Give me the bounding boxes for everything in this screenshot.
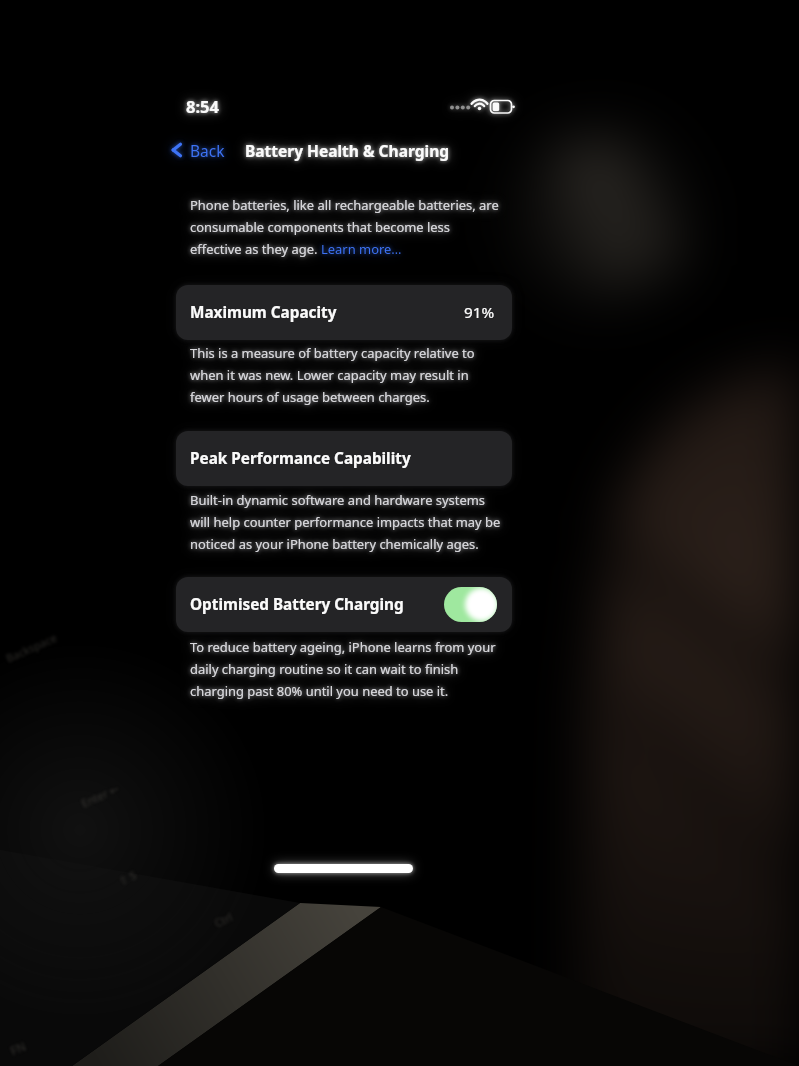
staticText: 91% — [464, 302, 495, 323]
staticText: Maximum Capacity — [190, 302, 337, 323]
staticText: FN — [7, 1037, 28, 1058]
button[interactable]: Optimised Battery Charging, on — [444, 587, 497, 622]
staticText: To reduce battery ageing, iPhone learns … — [190, 638, 496, 656]
staticText: Phone batteries, like all rechargeable b… — [190, 196, 499, 214]
staticText: Maximum Capacity — [190, 302, 337, 323]
staticText: daily charging routine so it can wait to… — [190, 660, 459, 678]
staticText: fewer hours of usage between charges. — [190, 388, 430, 406]
staticText: Battery Health & Charging — [245, 140, 449, 161]
staticText: consumable components that become less — [190, 218, 451, 236]
staticText: Learn more… — [321, 240, 402, 258]
staticText: when it was new. Lower capacity may resu… — [190, 366, 469, 384]
staticText: will help counter performance impacts th… — [190, 513, 501, 531]
staticText: ⇧ S — [116, 867, 139, 888]
staticText: daily charging routine so it can wait to… — [190, 660, 459, 678]
staticText: charging past 80% until you need to use … — [190, 682, 449, 700]
staticText: Ctrl — [212, 909, 235, 930]
staticText: Built-in dynamic software and hardware s… — [190, 491, 486, 509]
staticText: 91% — [464, 302, 495, 323]
staticText: 8:54 — [186, 95, 219, 117]
staticText: effective as they age. — [190, 240, 321, 258]
staticText: effective as they age. — [190, 240, 321, 258]
staticText: fewer hours of usage between charges. — [190, 388, 430, 406]
staticText: This is a measure of battery capacity re… — [190, 344, 475, 362]
staticText: This is a measure of battery capacity re… — [190, 344, 475, 362]
staticText: Optimised Battery Charging — [190, 594, 404, 615]
staticText: when it was new. Lower capacity may resu… — [190, 366, 469, 384]
staticText: charging past 80% until you need to use … — [190, 682, 449, 700]
staticText: This is a measure of battery capacity re… — [190, 344, 475, 362]
staticText: Built-in dynamic software and hardware s… — [190, 491, 486, 509]
staticText: noticed as your iPhone battery chemicall… — [190, 535, 479, 553]
staticText: effective as they age. — [190, 240, 321, 258]
staticText: Peak Performance Capability — [190, 448, 411, 469]
staticText: Back — [190, 140, 225, 161]
staticText: Peak Performance Capability — [190, 448, 411, 469]
staticText: noticed as your iPhone battery chemicall… — [190, 535, 479, 553]
staticText: Enter ← — [79, 780, 121, 810]
staticText: daily charging routine so it can wait to… — [190, 660, 459, 678]
staticText: Battery Health & Charging — [245, 140, 449, 161]
staticText: To reduce battery ageing, iPhone learns … — [190, 638, 496, 656]
staticText: Peak Performance Capability — [190, 448, 411, 469]
staticText: Optimised Battery Charging — [190, 594, 404, 615]
button[interactable]: Optimised Battery Charging — [176, 577, 512, 632]
staticText: consumable components that become less — [190, 218, 451, 236]
staticText: will help counter performance impacts th… — [190, 513, 501, 531]
button[interactable]: Maximum Capacity — [176, 285, 512, 340]
staticText: Maximum Capacity — [190, 302, 337, 323]
staticText: charging past 80% until you need to use … — [190, 682, 449, 700]
button[interactable]: Back — [168, 137, 227, 163]
staticText: 91% — [464, 302, 495, 323]
staticText: will help counter performance impacts th… — [190, 513, 501, 531]
staticText: Backspace — [3, 629, 60, 666]
staticText: Back — [190, 140, 225, 161]
staticText: consumable components that become less — [190, 218, 451, 236]
staticText: 8:54 — [186, 95, 219, 117]
staticText: when it was new. Lower capacity may resu… — [190, 366, 469, 384]
staticText: fewer hours of usage between charges. — [190, 388, 430, 406]
staticText: Learn more… — [321, 240, 402, 258]
staticText: Optimised Battery Charging — [190, 594, 404, 615]
staticText: noticed as your iPhone battery chemicall… — [190, 535, 479, 553]
button[interactable]: Learn more… — [321, 240, 402, 258]
staticText: 8:54 — [186, 95, 219, 117]
button[interactable]: Peak Performance Capability — [176, 431, 512, 486]
staticText: Back — [190, 140, 225, 161]
staticText: Built-in dynamic software and hardware s… — [190, 491, 486, 509]
staticText: Phone batteries, like all rechargeable b… — [190, 196, 499, 214]
staticText: Battery Health & Charging — [245, 140, 449, 161]
staticText: To reduce battery ageing, iPhone learns … — [190, 638, 496, 656]
staticText: Phone batteries, like all rechargeable b… — [190, 196, 499, 214]
